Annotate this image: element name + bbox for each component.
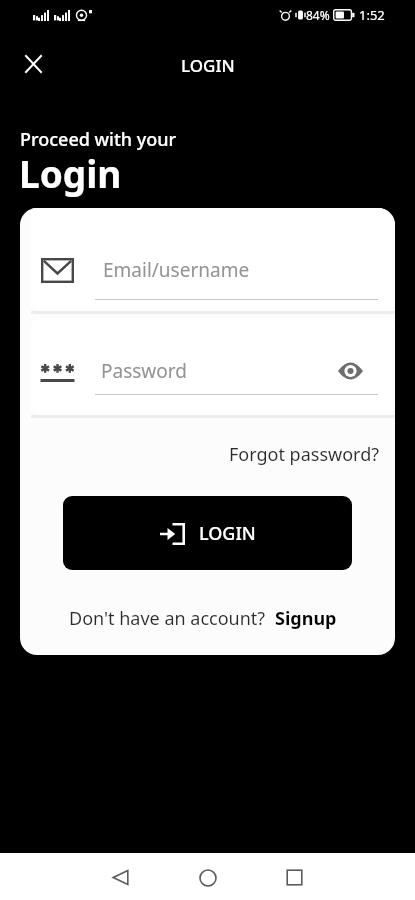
staticText: 84% — [306, 7, 330, 23]
staticText: Proceed with your — [20, 127, 177, 152]
button[interactable]: Signup — [275, 606, 337, 631]
button[interactable]: Password — [31, 318, 395, 415]
button[interactable]: Show password — [332, 355, 368, 387]
button[interactable]: Recents — [270, 854, 318, 900]
staticText: 1:52 — [359, 6, 385, 24]
button[interactable]: Close — [10, 41, 56, 87]
button[interactable]: Home — [184, 854, 232, 900]
button[interactable]: Forgot password? — [229, 442, 380, 467]
staticText: Password — [101, 358, 187, 384]
button[interactable]: Email/username — [31, 208, 395, 311]
staticText: Login — [19, 148, 122, 198]
staticText: LOGIN — [199, 521, 256, 546]
staticText: Don't have an account? — [69, 606, 266, 631]
button[interactable]: LOGIN — [63, 496, 352, 570]
staticText: Email/username — [103, 257, 250, 283]
button[interactable]: Back — [96, 854, 144, 900]
staticText: LOGIN — [181, 54, 235, 77]
